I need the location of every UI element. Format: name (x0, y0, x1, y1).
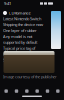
button[interactable]: Toolbar item (42, 89, 53, 93)
button[interactable]: Toolbar item (11, 89, 22, 93)
staticText: Scratch da something (3, 57, 40, 63)
staticText: Shipping the device now (3, 22, 43, 27)
button[interactable]: Toolbar item (1, 89, 11, 93)
staticText: CDRomance (8, 10, 30, 16)
staticText: Image courtesy of the publisher (3, 74, 57, 79)
button[interactable]: Toolbar item (32, 89, 42, 93)
staticText: 9:41 (4, 1, 11, 6)
staticText: the console body (3, 51, 31, 57)
button[interactable]: Toolbar item (53, 89, 63, 93)
staticText: Latest Nintendo Switch (3, 16, 41, 21)
staticText: supported by default (3, 40, 37, 45)
staticText: Typical price tag of (3, 46, 35, 51)
button[interactable]: Toolbar item (22, 89, 32, 93)
staticText: One layer of rubber (3, 28, 37, 33)
staticText: Any model is not (3, 34, 32, 39)
